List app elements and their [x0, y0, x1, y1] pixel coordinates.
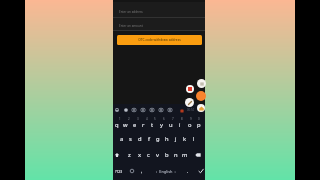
staticText: v	[156, 151, 159, 159]
button[interactable]: d	[135, 133, 144, 145]
button[interactable]: 9	[186, 113, 195, 125]
button[interactable]: 6	[159, 113, 168, 125]
button[interactable]: u	[166, 119, 175, 131]
staticText: 6	[163, 117, 165, 121]
button[interactable]: ,	[137, 165, 147, 177]
staticText: 7	[172, 117, 174, 121]
button[interactable]: o	[185, 119, 194, 131]
staticText: i	[179, 121, 181, 129]
button[interactable]: Emoji	[127, 165, 137, 177]
button[interactable]: Keyboard tool 5	[148, 104, 156, 116]
button[interactable]: v	[153, 149, 162, 161]
button[interactable]: h	[162, 133, 171, 145]
staticText: u	[169, 121, 173, 129]
button[interactable]: y	[157, 119, 166, 131]
button[interactable]: c	[144, 149, 153, 161]
button[interactable]: f	[144, 133, 153, 145]
button[interactable]: Draw	[185, 98, 194, 107]
staticText: y	[160, 121, 163, 129]
button[interactable]: 0	[194, 113, 203, 125]
button[interactable]: OTC-code withdraw address	[117, 35, 202, 45]
button[interactable]: 2	[124, 113, 133, 125]
staticText: 0	[198, 117, 200, 121]
staticText: m	[182, 151, 188, 159]
button[interactable]: s	[126, 133, 135, 145]
button[interactable]: Keyboard tool 7	[166, 104, 174, 116]
button[interactable]: Stop recording	[186, 85, 194, 93]
button[interactable]: z	[125, 149, 134, 161]
staticText: 2	[128, 117, 130, 121]
button[interactable]: p	[194, 119, 203, 131]
button[interactable]: 3	[133, 113, 142, 125]
staticText: 8	[181, 117, 183, 121]
button[interactable]: Enter an address	[113, 2, 205, 17]
staticText: z	[128, 151, 131, 159]
staticText: n	[174, 151, 178, 159]
button[interactable]: Recorder menu	[196, 91, 206, 101]
button[interactable]: Pause	[197, 79, 206, 88]
button[interactable]: Home	[197, 104, 205, 112]
staticText: g	[156, 135, 160, 143]
button[interactable]: j	[171, 133, 180, 145]
button[interactable]: r	[139, 119, 148, 131]
button[interactable]: Keyboard tool 3	[130, 104, 138, 116]
button[interactable]: Keyboard tool 2	[122, 104, 130, 116]
button[interactable]: Enter an amount	[113, 18, 205, 30]
staticText: f	[148, 135, 150, 143]
button[interactable]: x	[135, 149, 144, 161]
staticText: ‹ English ›	[156, 169, 176, 174]
button[interactable]: 5	[150, 113, 159, 125]
staticText: d	[138, 135, 142, 143]
button[interactable]: n	[171, 149, 180, 161]
button[interactable]: 8	[177, 113, 186, 125]
button[interactable]: Keyboard tool 4	[139, 104, 147, 116]
button[interactable]: Keyboard tool 6	[157, 104, 165, 116]
button[interactable]: ?123	[114, 165, 124, 177]
button[interactable]: .	[183, 165, 193, 177]
staticText: o	[188, 121, 192, 129]
staticText: OTC-code withdraw address	[138, 38, 181, 42]
staticText: b	[165, 151, 169, 159]
button[interactable]: Backspace	[193, 149, 203, 161]
button[interactable]: e	[130, 119, 139, 131]
button[interactable]: Recording	[180, 109, 184, 113]
staticText: j	[175, 135, 177, 143]
staticText: w	[123, 121, 128, 129]
button[interactable]: m	[180, 149, 189, 161]
staticText: Enter an address	[119, 10, 143, 14]
button[interactable]: Shift	[112, 149, 122, 161]
staticText: 1	[119, 117, 121, 121]
button[interactable]: a	[117, 133, 126, 145]
staticText: k	[183, 135, 187, 143]
button[interactable]: b	[162, 149, 171, 161]
button[interactable]: 1	[115, 113, 124, 125]
button[interactable]: l	[189, 133, 198, 145]
staticText: s	[129, 135, 132, 143]
button[interactable]: k	[180, 133, 189, 145]
staticText: l	[193, 135, 195, 143]
button[interactable]: 7	[168, 113, 177, 125]
button[interactable]: i	[175, 119, 184, 131]
staticText: r	[142, 121, 145, 129]
staticText: Enter an amount	[119, 24, 143, 28]
staticText: 5	[154, 117, 156, 121]
staticText: q	[115, 121, 119, 129]
staticText: 4	[146, 117, 148, 121]
button[interactable]: g	[153, 133, 162, 145]
button[interactable]: Keyboard tool 1	[113, 104, 121, 116]
button[interactable]: q	[112, 119, 121, 131]
button[interactable]: ‹ English ›	[146, 165, 186, 177]
staticText: p	[197, 121, 201, 129]
button[interactable]: w	[121, 119, 130, 131]
staticText: 3	[137, 117, 139, 121]
button[interactable]: 4	[142, 113, 151, 125]
staticText: 9	[190, 117, 192, 121]
staticText: ,	[141, 168, 143, 175]
staticText: c	[147, 151, 150, 159]
staticText: a	[120, 135, 124, 143]
staticText: x	[138, 151, 142, 159]
button[interactable]: t	[148, 119, 157, 131]
staticText: e	[133, 121, 137, 129]
button[interactable]: Enter	[196, 165, 206, 177]
staticText: ?123	[115, 169, 123, 173]
